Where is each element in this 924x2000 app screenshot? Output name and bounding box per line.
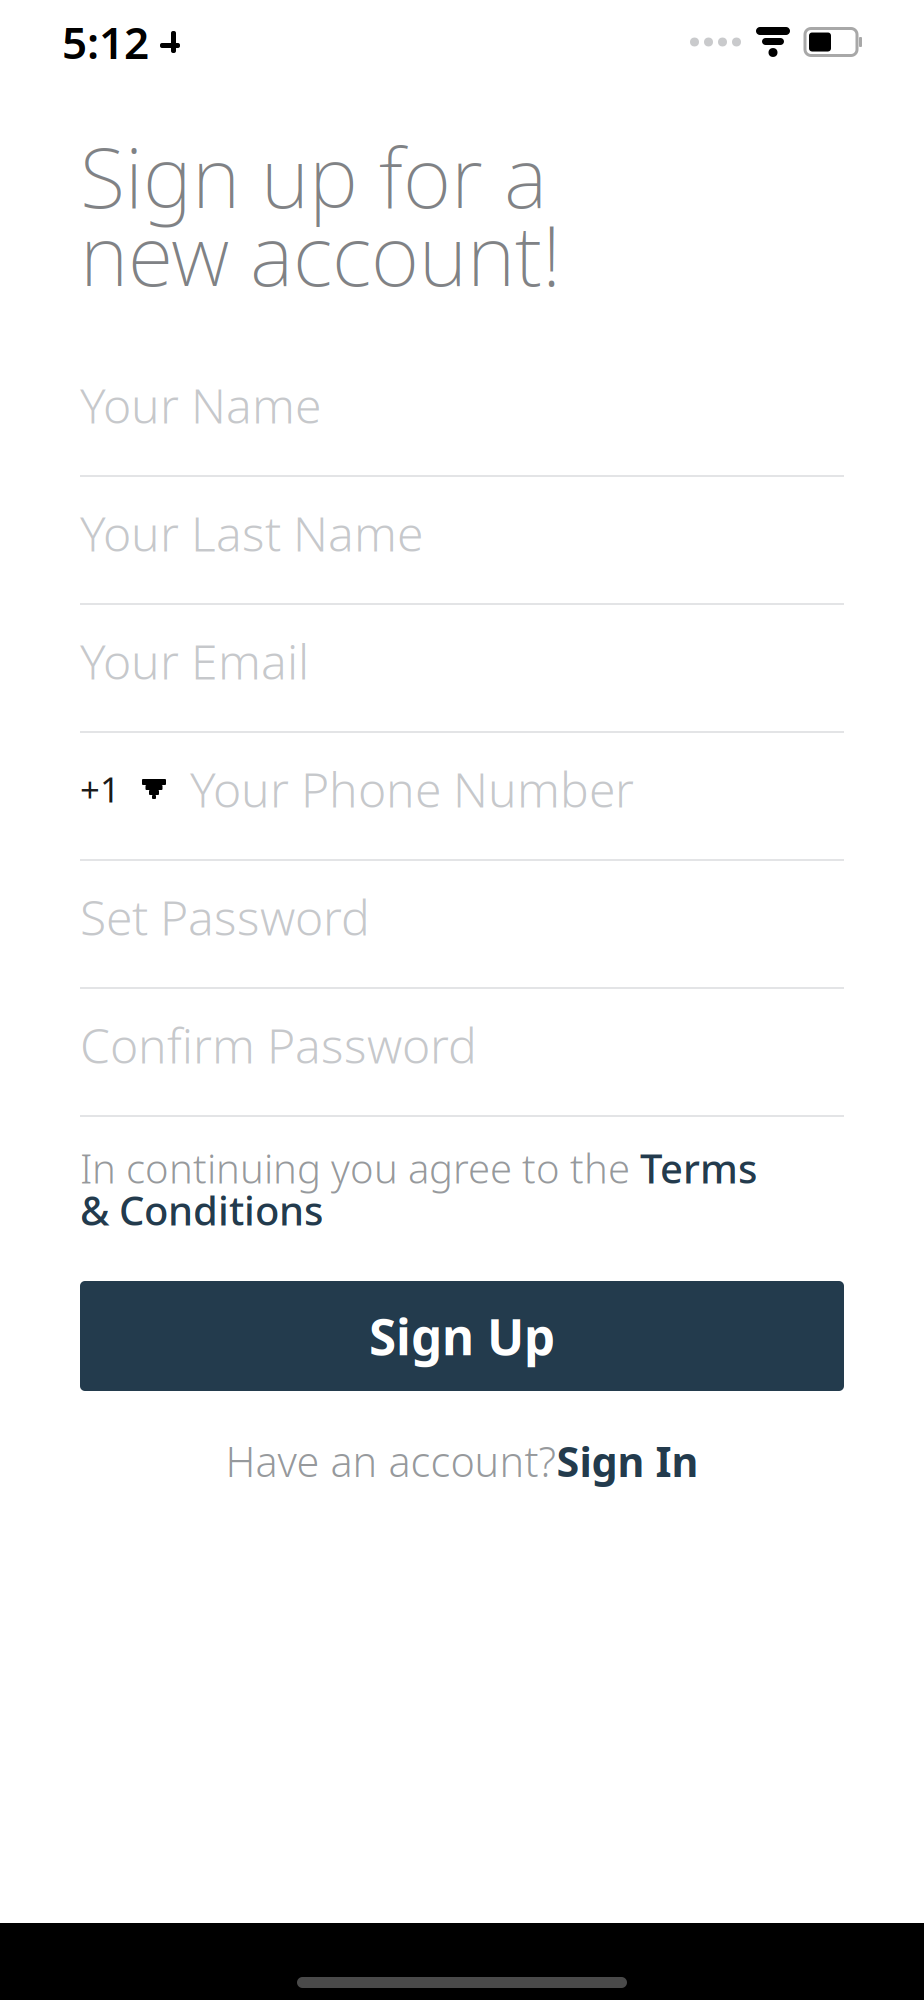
button[interactable]: Your Last Name: [80, 477, 844, 605]
staticText: Sign up for a: [80, 121, 547, 231]
staticText: Sign Up: [369, 1303, 555, 1369]
staticText: Your Last Name: [80, 501, 423, 565]
staticText: Confirm Password: [80, 1013, 477, 1077]
staticText: & Conditions: [80, 1183, 323, 1236]
button[interactable]: Your Email: [80, 605, 844, 733]
button[interactable]: Have an account?: [225, 1437, 698, 1485]
staticText: Terms: [640, 1141, 757, 1194]
button[interactable]: & Conditions: [80, 1189, 323, 1231]
staticText: Your Phone Number: [190, 757, 634, 821]
staticText: new account!: [80, 199, 561, 309]
button[interactable]: Terms: [640, 1141, 757, 1194]
staticText: Have an account?: [225, 1434, 556, 1488]
staticText: Your Name: [80, 373, 321, 437]
button[interactable]: Your Phone Number: [190, 759, 844, 819]
staticText: 5:12: [62, 13, 149, 71]
staticText: Sign In: [556, 1434, 698, 1488]
button[interactable]: +1: [80, 759, 190, 819]
button[interactable]: Set Password: [80, 861, 844, 989]
staticText: In continuing you agree to the: [80, 1141, 640, 1194]
button[interactable]: Confirm Password: [80, 989, 844, 1117]
staticText: +1: [80, 766, 120, 812]
staticText: Your Email: [80, 629, 309, 693]
button[interactable]: Your Name: [80, 349, 844, 477]
staticText: Set Password: [80, 885, 370, 949]
button[interactable]: Sign Up: [80, 1281, 844, 1391]
